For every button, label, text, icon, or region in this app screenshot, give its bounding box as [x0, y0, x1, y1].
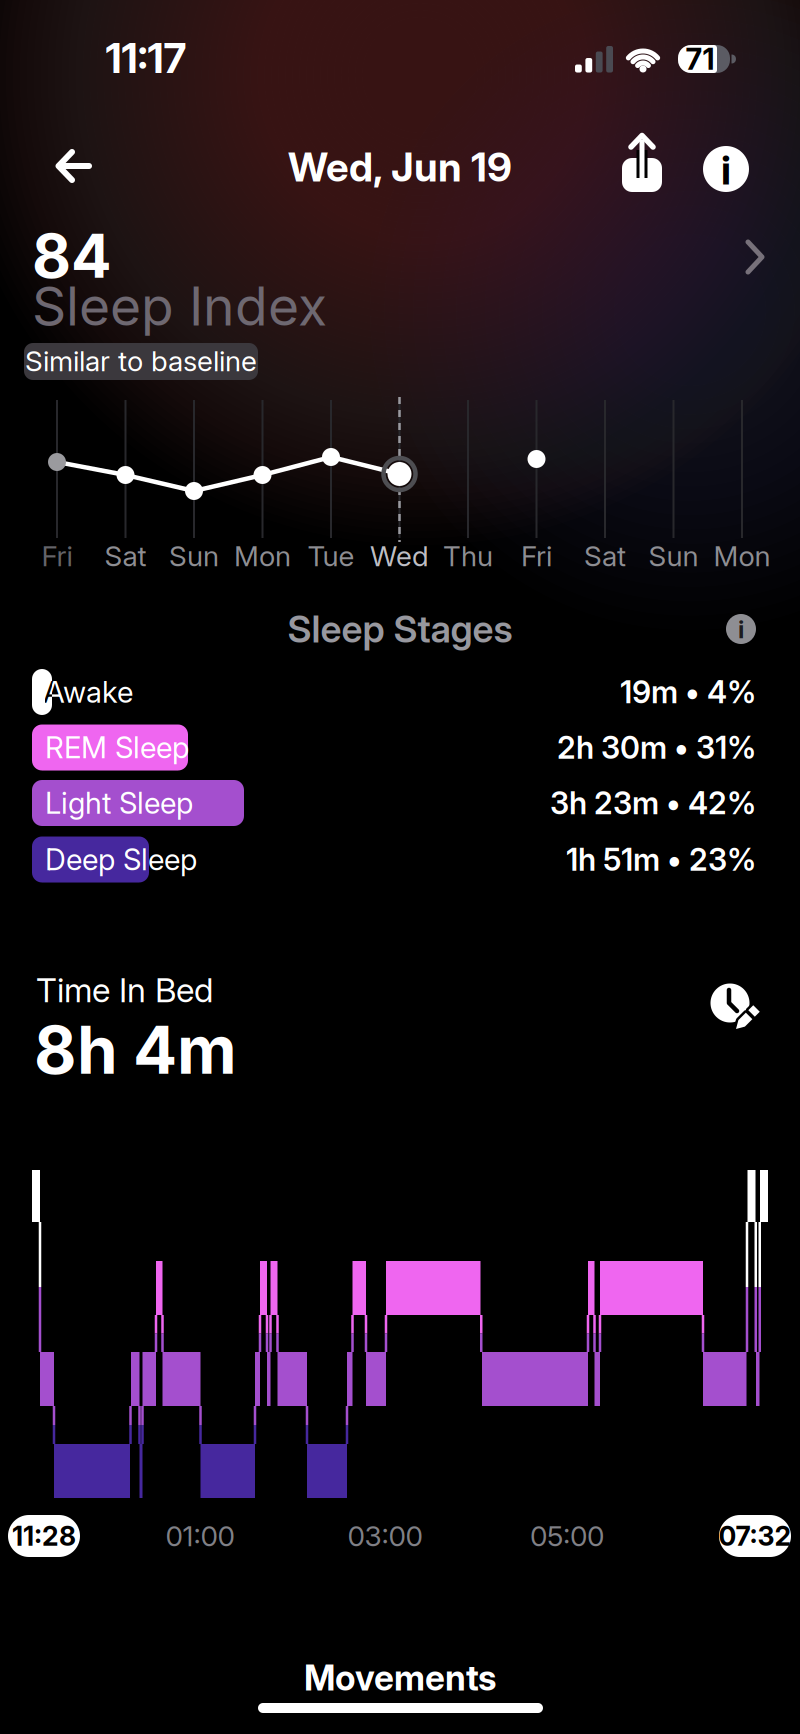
button[interactable]: i: [703, 146, 749, 192]
staticText: 07:32: [718, 1520, 791, 1552]
staticText: Sun: [648, 539, 698, 572]
staticText: 71: [685, 42, 714, 76]
staticText: Light Sleep: [45, 786, 193, 820]
button[interactable]: [620, 133, 664, 194]
staticText: Deep Sleep: [45, 842, 197, 877]
staticText: 2h 30m • 31%: [557, 729, 756, 766]
staticText: i: [738, 615, 744, 644]
staticText: 11:17: [105, 34, 186, 82]
staticText: Mon: [234, 539, 291, 572]
staticText: Thu: [443, 539, 493, 572]
staticText: 01:00: [165, 1519, 234, 1552]
staticText: Fri: [41, 539, 72, 572]
staticText: Fri: [521, 539, 552, 572]
staticText: 03:00: [347, 1519, 422, 1552]
staticText: 05:00: [530, 1519, 604, 1552]
staticText: 19m • 4%: [620, 674, 756, 710]
staticText: Sleep Stages: [287, 607, 512, 651]
staticText: Tue: [307, 539, 354, 572]
button[interactable]: 84: [0, 222, 800, 392]
staticText: Wed: [370, 539, 429, 572]
staticText: Sleep Index: [32, 274, 327, 337]
staticText: 8h 4m: [34, 1011, 237, 1089]
staticText: REM Sleep: [45, 730, 189, 765]
staticText: 84: [32, 221, 112, 291]
staticText: Movements: [304, 1658, 496, 1698]
button[interactable]: [706, 981, 760, 1033]
staticText: 1h 51m • 23%: [566, 841, 756, 878]
staticText: Sun: [169, 539, 219, 572]
button[interactable]: [55, 150, 91, 184]
button[interactable]: i: [726, 614, 756, 644]
staticText: Awake: [45, 675, 133, 709]
staticText: Time In Bed: [36, 970, 213, 1010]
staticText: Sat: [584, 539, 626, 572]
staticText: i: [721, 146, 731, 194]
staticText: Wed, Jun 19: [288, 143, 512, 191]
staticText: 11:28: [12, 1520, 76, 1552]
staticText: Similar to baseline: [25, 344, 257, 377]
staticText: Mon: [713, 539, 770, 572]
staticText: A: [43, 675, 63, 709]
staticText: 3h 23m • 42%: [550, 785, 756, 821]
staticText: Sat: [104, 539, 146, 572]
